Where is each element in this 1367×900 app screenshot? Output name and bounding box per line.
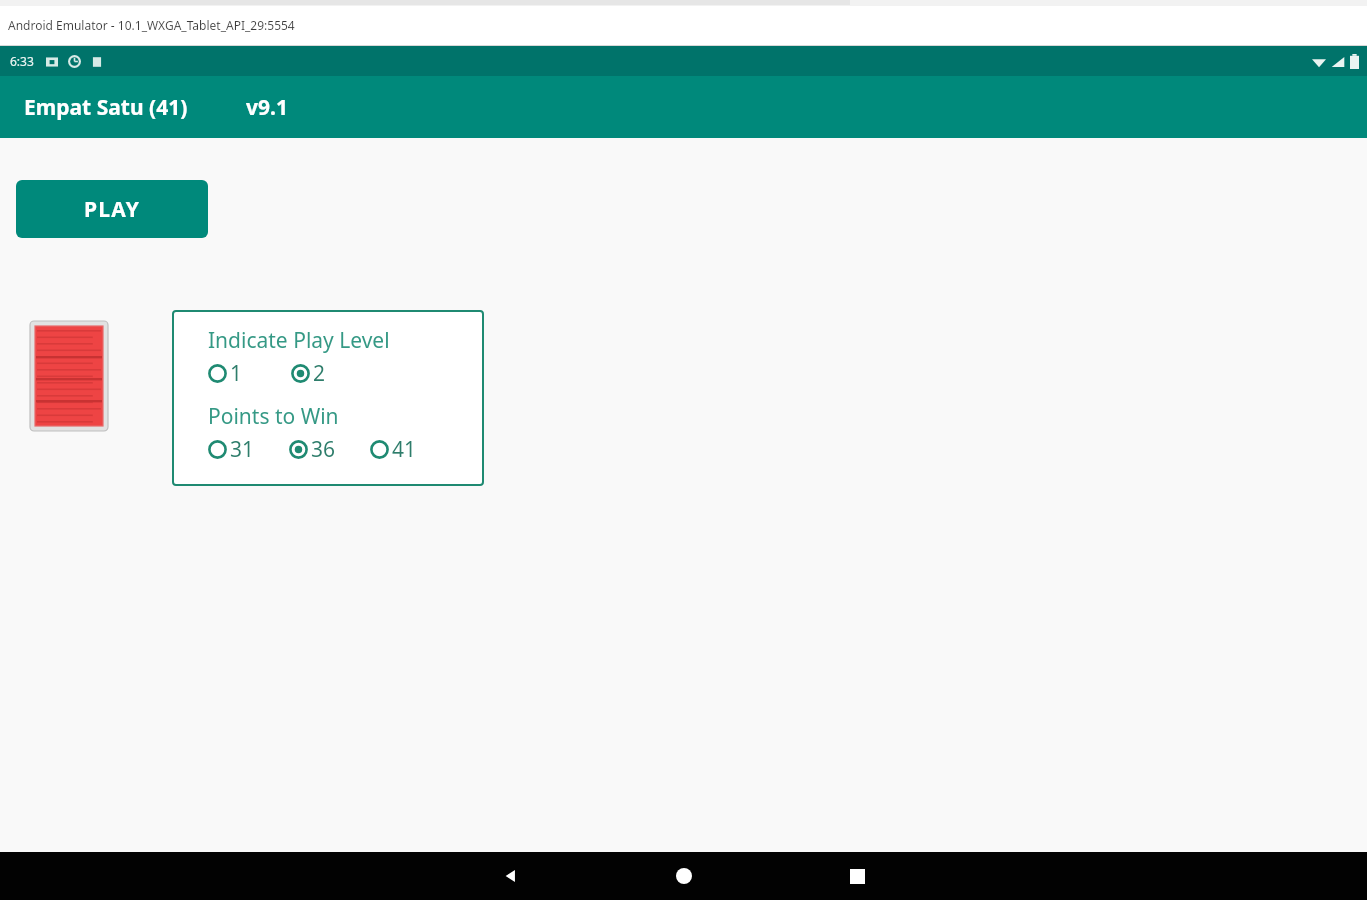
staticText: 2	[313, 359, 326, 388]
button[interactable]: 1	[208, 359, 243, 388]
staticText: PLAY	[84, 195, 140, 224]
staticText: 36	[311, 435, 336, 464]
staticText: Indicate Play Level	[208, 326, 390, 355]
button[interactable]: Recent apps	[836, 855, 878, 897]
staticText: Empat Satu (41)	[24, 93, 188, 122]
staticText: 31	[230, 435, 255, 464]
button[interactable]: Home	[663, 855, 705, 897]
staticText: Android Emulator - 10.1_WXGA_Tablet_API_…	[8, 17, 295, 33]
button[interactable]: 2	[291, 359, 326, 388]
staticText: 1	[230, 359, 243, 388]
staticText: v9.1	[246, 93, 288, 122]
button[interactable]: 36	[289, 435, 336, 464]
button[interactable]: PLAY	[16, 180, 208, 238]
button[interactable]: Back	[490, 855, 532, 897]
staticText: 6:33	[10, 53, 34, 69]
staticText: Points to Win	[208, 402, 339, 431]
button[interactable]: Card back	[30, 321, 108, 431]
button[interactable]: 31	[208, 435, 255, 464]
staticText: 41	[392, 435, 417, 464]
button[interactable]: 41	[370, 435, 417, 464]
